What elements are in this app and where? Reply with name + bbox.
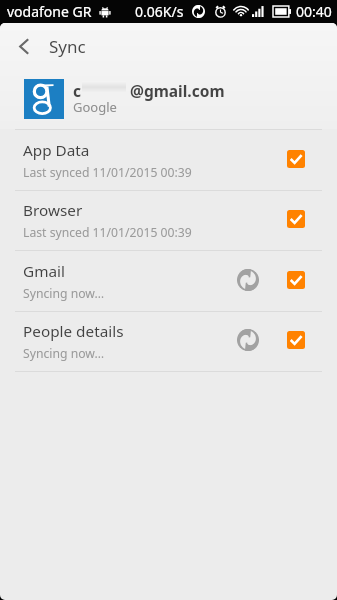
button[interactable]: c (0, 23, 337, 129)
staticText: Last synced 11/01/2015 00:39 (23, 224, 192, 241)
button[interactable]: People details (0, 309, 337, 370)
staticText: Gmail (23, 261, 65, 282)
staticText: Syncing now… (23, 285, 105, 302)
button[interactable]: Toggle Gmail sync (287, 271, 305, 289)
staticText: App Data (23, 140, 90, 161)
staticText: Browser (23, 200, 83, 221)
button[interactable]: Toggle Browser sync (287, 210, 305, 228)
button[interactable]: Browser (0, 188, 337, 249)
button[interactable]: Toggle App Data sync (287, 150, 305, 168)
staticText: vodafone GR (7, 2, 92, 21)
staticText: 0.06K/s (135, 2, 184, 21)
staticText: Google (73, 98, 117, 116)
staticText: Syncing now… (23, 345, 105, 362)
button[interactable]: Toggle People details sync (287, 331, 305, 349)
staticText: Sync (49, 35, 86, 58)
button[interactable]: Navigate up (0, 23, 48, 69)
button[interactable]: App Data (0, 128, 337, 189)
staticText: c (73, 80, 81, 101)
staticText: 00:40 (296, 2, 332, 21)
button[interactable]: Gmail (0, 249, 337, 310)
staticText: @gmail.com (130, 80, 225, 101)
staticText: People details (23, 321, 124, 342)
staticText: Last synced 11/01/2015 00:39 (23, 164, 192, 181)
